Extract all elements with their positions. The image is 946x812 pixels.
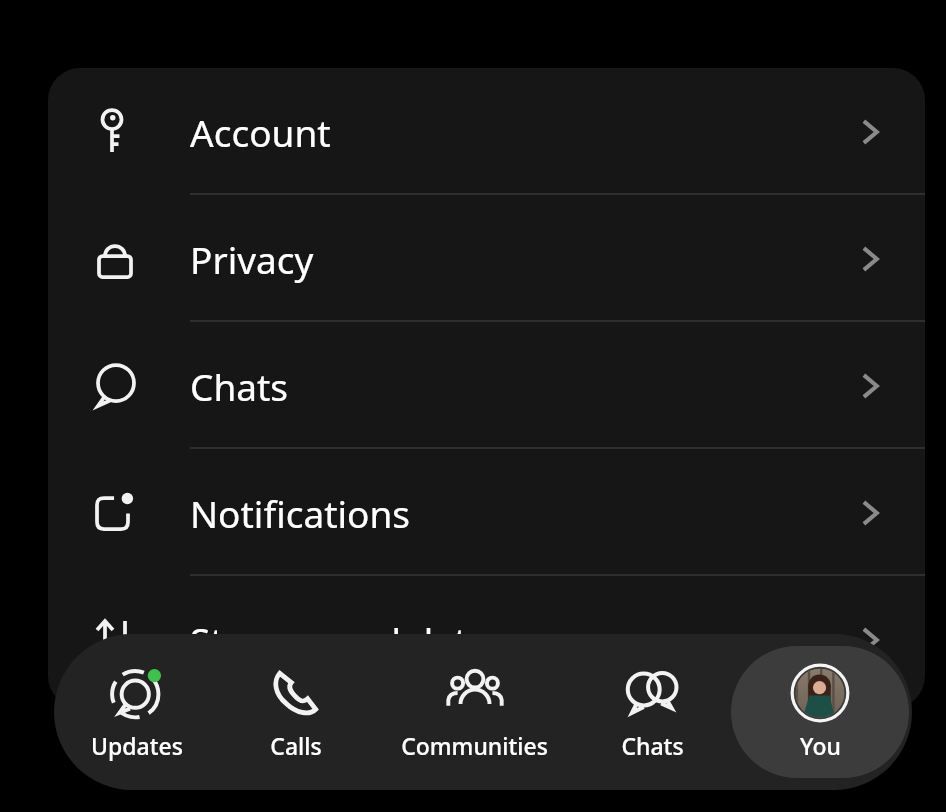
button[interactable]: Chats (48, 322, 925, 449)
button[interactable]: Communities (374, 646, 574, 778)
staticText: Storage and data (190, 615, 489, 665)
button[interactable]: Notifications (48, 449, 925, 576)
button[interactable]: You (731, 646, 909, 778)
button[interactable]: Storage and data (48, 576, 925, 703)
staticText: Privacy (190, 234, 314, 284)
button[interactable]: Account (48, 68, 925, 195)
button[interactable]: Chats (577, 646, 727, 778)
button[interactable]: Calls (221, 646, 371, 778)
staticText: Updates (91, 730, 183, 761)
staticText: Account (190, 107, 331, 157)
staticText: Chats (190, 361, 289, 411)
staticText: Notifications (190, 488, 411, 538)
button[interactable]: Privacy (48, 195, 925, 322)
staticText: Communities (401, 730, 548, 761)
button[interactable]: Updates (57, 646, 217, 778)
staticText: Calls (270, 730, 322, 761)
staticText: You (800, 730, 841, 761)
staticText: Chats (621, 730, 684, 761)
